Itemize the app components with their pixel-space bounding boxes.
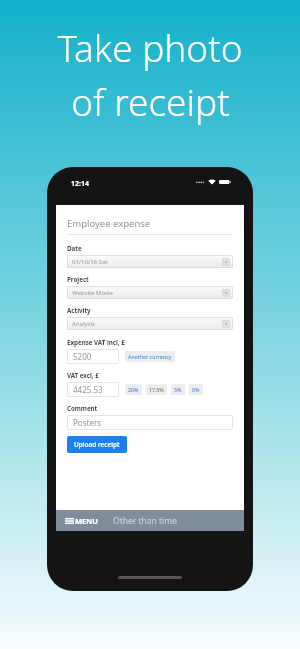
button[interactable]: 01/10/16 Sat <box>67 255 233 268</box>
staticText: VAT excl, £ <box>67 371 99 379</box>
button[interactable]: 17.5% <box>146 384 167 395</box>
staticText: Website Movie <box>72 289 113 297</box>
staticText: Another currency <box>128 353 172 360</box>
button[interactable]: Website Movie <box>67 286 233 299</box>
button[interactable]: 0% <box>189 384 203 395</box>
button[interactable]: Upload receipt <box>67 436 127 453</box>
staticText: Comment <box>67 404 98 412</box>
staticText: 5200 <box>73 351 92 362</box>
staticText: Employee expense <box>67 217 151 230</box>
staticText: MENU <box>75 516 99 526</box>
staticText: 20% <box>128 386 139 393</box>
button[interactable]: 20% <box>125 384 142 395</box>
staticText: 12:14 <box>71 179 89 189</box>
button[interactable]: Another currency <box>125 351 175 362</box>
staticText: Upload receipt <box>74 440 120 449</box>
staticText: Date <box>67 244 82 252</box>
staticText: Posters <box>73 417 102 428</box>
staticText: Analysis <box>72 320 95 328</box>
button[interactable]: Menu <box>65 516 99 526</box>
staticText: 0% <box>192 386 200 393</box>
button[interactable]: 4425.53 <box>67 382 119 397</box>
button[interactable]: Analysis <box>67 317 233 330</box>
staticText: 17.5% <box>149 386 164 393</box>
staticText: Take photo <box>57 22 243 72</box>
staticText: 4425.53 <box>73 384 103 395</box>
staticText: Expense VAT incl, £ <box>67 338 125 346</box>
staticText: 5% <box>174 386 182 393</box>
staticText: 01/10/16 Sat <box>72 258 108 266</box>
button[interactable]: 5200 <box>67 349 119 364</box>
button[interactable]: Posters <box>67 415 233 430</box>
staticText: of receipt <box>71 76 230 126</box>
staticText: Activity <box>67 306 91 314</box>
button[interactable]: 5% <box>171 384 185 395</box>
button[interactable]: Other than time <box>113 515 178 527</box>
staticText: Project <box>67 275 89 283</box>
